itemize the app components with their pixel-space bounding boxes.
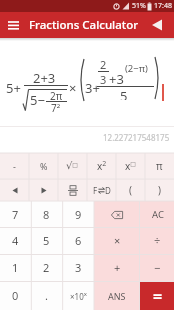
button[interactable] <box>0 179 29 201</box>
button[interactable]: − <box>140 254 174 281</box>
staticText: D <box>105 185 111 196</box>
staticText: 6 <box>75 233 82 248</box>
staticText: 9 <box>75 207 82 222</box>
button[interactable]: x□ <box>116 153 145 179</box>
staticText: 5 <box>120 87 128 100</box>
button[interactable]: % <box>29 153 58 179</box>
staticText: Fractions Calculator <box>29 17 139 33</box>
button[interactable] <box>94 201 140 228</box>
staticText: 12.227217548175 <box>103 132 170 143</box>
staticText: ( <box>129 183 132 197</box>
button[interactable]: ×10x <box>63 281 94 310</box>
button[interactable]: ( <box>116 179 145 201</box>
staticText: × <box>69 79 77 93</box>
staticText: 3 <box>100 72 107 85</box>
staticText: ‐ <box>13 160 16 172</box>
button[interactable]: 4 <box>0 227 31 254</box>
staticText: 17:48 <box>154 1 172 11</box>
button[interactable]: 3 <box>63 254 94 281</box>
staticText: ) <box>158 183 161 197</box>
button[interactable]: × <box>94 227 140 254</box>
button[interactable] <box>58 179 87 201</box>
button[interactable]: + <box>94 254 140 281</box>
staticText: AC <box>152 208 164 221</box>
button[interactable]: 5 <box>31 227 62 254</box>
staticText: ANS <box>108 290 126 302</box>
button[interactable]: 1 <box>0 254 31 281</box>
staticText: 0 <box>12 288 19 303</box>
staticText: 2+3 <box>33 69 56 84</box>
staticText: π <box>156 159 163 173</box>
button[interactable]: ÷ <box>140 227 174 254</box>
button[interactable] <box>8 21 19 30</box>
staticText: (2−π) <box>125 62 148 75</box>
staticText: 2 <box>43 260 50 275</box>
button[interactable]: √□ <box>58 153 87 179</box>
staticText: × <box>114 233 121 248</box>
button[interactable]: = <box>140 281 174 310</box>
staticText: x2 <box>97 159 107 173</box>
staticText: 7² <box>51 101 61 113</box>
staticText: − <box>154 260 161 275</box>
staticText: ×10x <box>70 290 87 302</box>
button[interactable]: 6 <box>63 227 94 254</box>
staticText: 2π <box>50 89 63 101</box>
button[interactable]: F <box>87 179 116 201</box>
staticText: 8 <box>43 207 50 222</box>
staticText: ÷ <box>154 233 161 248</box>
staticText: . <box>45 288 48 303</box>
staticText: 1 <box>12 260 19 275</box>
button[interactable]: ) <box>145 179 174 201</box>
button[interactable]: ANS <box>94 281 140 310</box>
button[interactable]: . <box>31 281 62 310</box>
staticText: 5− <box>30 91 45 105</box>
staticText: % <box>40 160 48 172</box>
button[interactable] <box>151 19 163 31</box>
button[interactable]: AC <box>140 201 174 228</box>
staticText: + <box>114 260 121 275</box>
staticText: 2 <box>100 57 107 70</box>
staticText: x□ <box>125 159 136 173</box>
staticText: F <box>93 185 98 196</box>
staticText: 7 <box>12 207 19 222</box>
staticText: 5 <box>43 233 50 248</box>
staticText: √□ <box>66 160 79 172</box>
staticText: +3 <box>109 70 124 84</box>
button[interactable]: 2 <box>31 254 62 281</box>
button[interactable]: ‐ <box>0 153 29 179</box>
staticText: 51% <box>132 1 146 11</box>
button[interactable]: 9 <box>63 201 94 228</box>
button[interactable]: 8 <box>31 201 62 228</box>
button[interactable] <box>29 179 58 201</box>
button[interactable]: π <box>145 153 174 179</box>
button[interactable]: 0 <box>0 281 31 310</box>
staticText: 5+ <box>6 79 21 93</box>
staticText: 3 <box>75 260 82 275</box>
button[interactable]: x2 <box>87 153 116 179</box>
staticText: = <box>153 285 163 307</box>
button[interactable]: 7 <box>0 201 31 228</box>
staticText: 4 <box>12 233 19 248</box>
staticText: 3+ <box>85 79 100 93</box>
